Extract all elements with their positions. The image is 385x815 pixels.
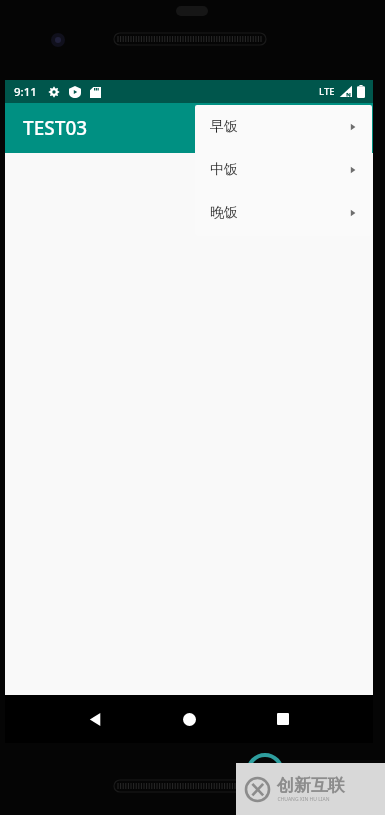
staticText: TEST03 bbox=[23, 115, 88, 141]
button[interactable]: Back bbox=[71, 695, 119, 743]
staticText: 创新互联 bbox=[277, 775, 345, 796]
staticText: 晚饭 bbox=[210, 204, 238, 222]
button[interactable]: Home bbox=[165, 695, 213, 743]
staticText: 9:11 bbox=[14, 84, 37, 100]
button[interactable]: 晚饭 bbox=[195, 191, 372, 234]
button[interactable]: 中饭 bbox=[195, 148, 372, 191]
staticText: CHUANG XIN HU LIAN bbox=[277, 796, 330, 803]
staticText: LTE bbox=[319, 85, 335, 98]
button[interactable]: 早饭 bbox=[195, 105, 372, 148]
button[interactable]: Recent apps bbox=[259, 695, 307, 743]
staticText: 早饭 bbox=[210, 118, 238, 136]
staticText: 中饭 bbox=[210, 161, 238, 179]
